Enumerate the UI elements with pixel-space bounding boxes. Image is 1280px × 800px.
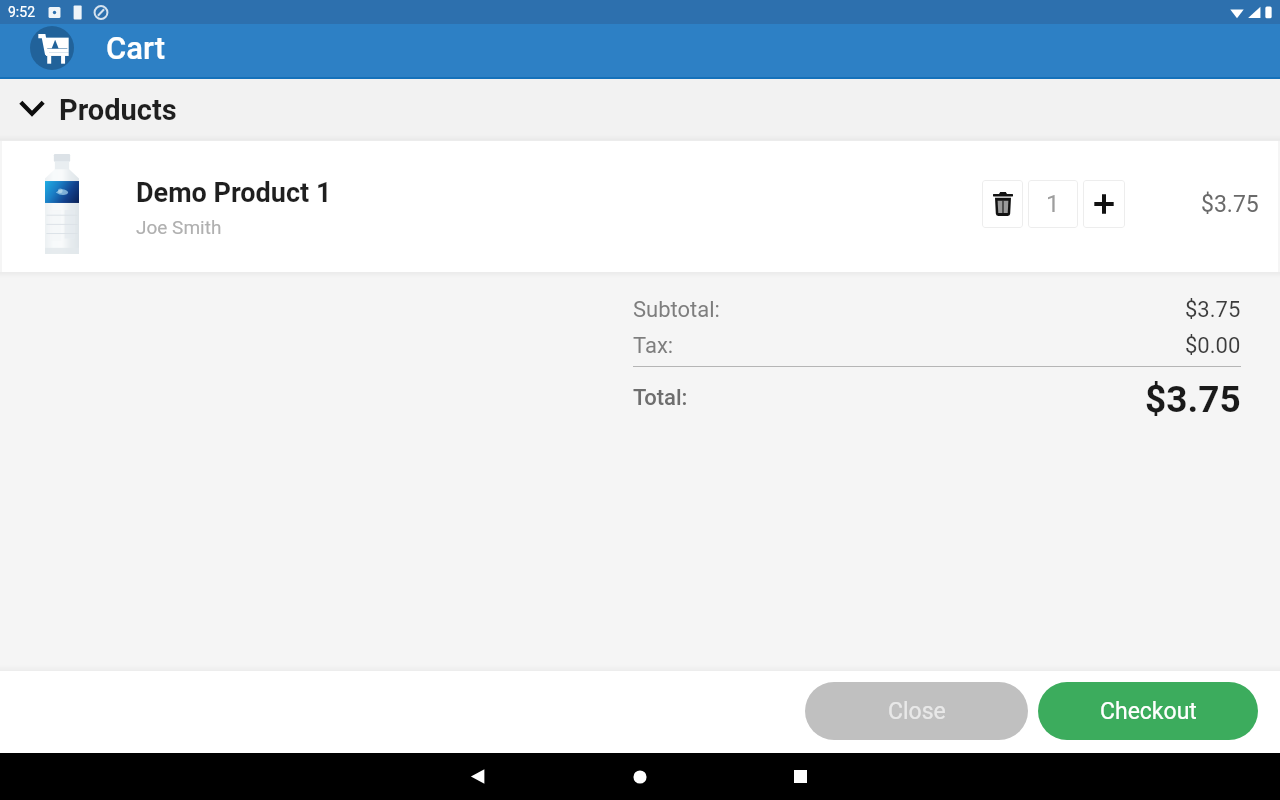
button[interactable]: Remove item [982, 180, 1023, 228]
button[interactable]: Products [0, 79, 1280, 140]
staticText: Close [888, 698, 946, 725]
button[interactable]: 1 [1028, 180, 1078, 228]
button[interactable]: Home [616, 753, 663, 800]
staticText: $3.75 [1201, 191, 1259, 218]
staticText: Cart [106, 30, 166, 66]
staticText: Joe Smith [136, 216, 222, 238]
button[interactable]: Back [454, 753, 501, 800]
staticText: 1 [1046, 190, 1060, 218]
button[interactable]: Recent apps [777, 753, 824, 800]
staticText: Tax: [633, 333, 674, 359]
button[interactable]: Demo Product 1 [2, 141, 1278, 272]
staticText: $0.00 [1185, 333, 1241, 359]
staticText: $3.75 [1145, 378, 1241, 418]
staticText: $3.75 [1185, 297, 1241, 323]
button[interactable]: Cart [30, 26, 74, 70]
staticText: Products [59, 93, 177, 127]
staticText: Checkout [1100, 698, 1197, 725]
staticText: Total: [633, 385, 688, 411]
button[interactable]: Add one [1083, 180, 1125, 228]
staticText: Demo Product 1 [136, 177, 332, 209]
staticText: 9:52 [8, 4, 35, 20]
button[interactable]: Close [805, 682, 1028, 740]
button[interactable]: Checkout [1038, 682, 1258, 740]
staticText: Subtotal: [633, 297, 720, 323]
